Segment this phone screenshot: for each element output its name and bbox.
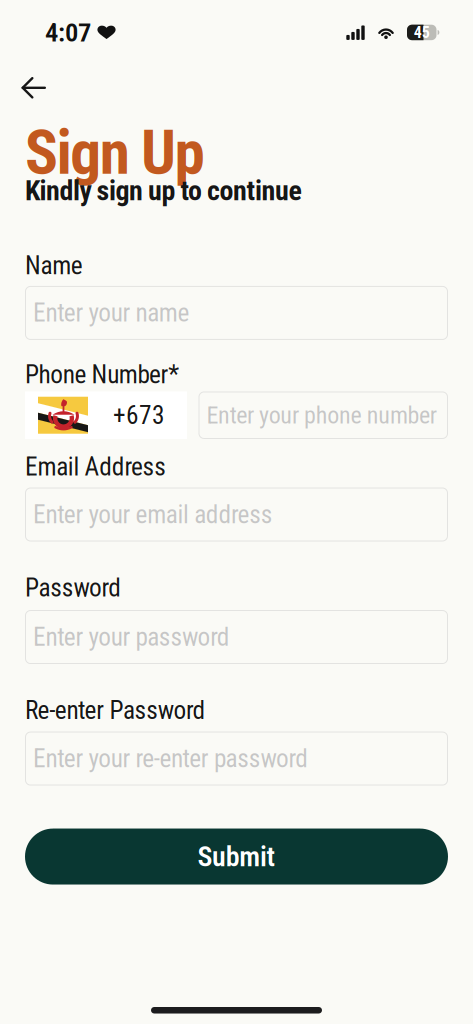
staticText: Name — [25, 253, 83, 278]
button[interactable]: Enter your re-enter password — [25, 732, 448, 786]
staticText: Enter your name — [33, 300, 189, 326]
staticText: Enter your phone number — [206, 403, 437, 427]
staticText: +673 — [113, 402, 165, 428]
staticText: Enter your re-enter password — [33, 746, 308, 771]
button[interactable]: Submit — [25, 829, 448, 885]
button[interactable]: Enter your name — [25, 286, 448, 340]
staticText: Re-enter Password — [25, 697, 206, 723]
staticText: Password — [25, 575, 121, 600]
button[interactable]: Enter your password — [25, 610, 448, 664]
button[interactable]: Back — [0, 77, 45, 98]
staticText: Enter your password — [33, 624, 230, 650]
staticText: Submit — [197, 842, 275, 871]
staticText: 4:07 — [45, 19, 91, 46]
button[interactable]: Country code +673 — [25, 391, 187, 439]
button[interactable]: Enter your phone number — [198, 391, 448, 439]
staticText: Enter your email address — [33, 502, 273, 527]
staticText: Kindly sign up to continue — [25, 177, 301, 205]
staticText: 45 — [414, 24, 430, 40]
staticText: Sign Up — [25, 122, 205, 184]
staticText: Email Address — [25, 454, 166, 479]
button[interactable]: Enter your email address — [25, 487, 448, 541]
staticText: Phone Number* — [25, 362, 179, 387]
